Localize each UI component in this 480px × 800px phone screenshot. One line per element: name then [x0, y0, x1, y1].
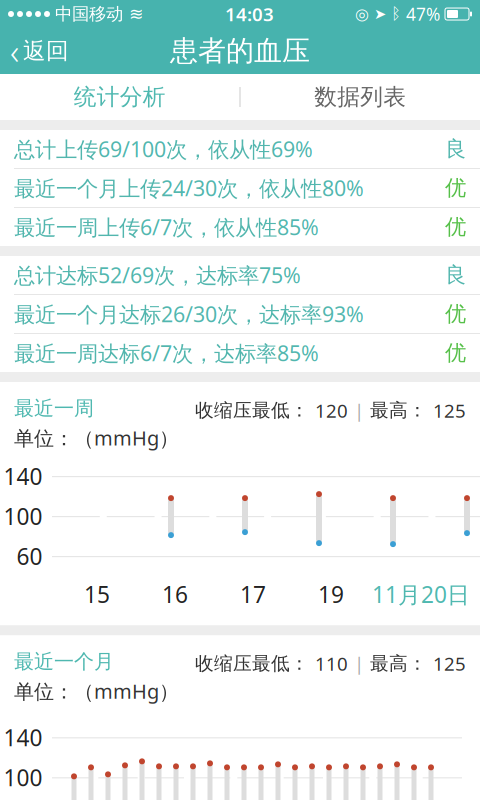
- staticText: ᛒ: [391, 6, 401, 22]
- staticText: 最近一周: [14, 396, 94, 421]
- staticText: 125: [433, 651, 466, 676]
- staticText: ◎: [355, 5, 369, 23]
- staticText: 数据列表: [314, 83, 406, 111]
- button[interactable]: ‹: [0, 28, 79, 74]
- staticText: 120: [315, 398, 348, 423]
- staticText: 100: [3, 501, 42, 531]
- staticText: 最高：: [370, 652, 427, 675]
- staticText: 返回: [23, 37, 69, 65]
- staticText: 16: [162, 579, 188, 609]
- staticText: 优: [445, 301, 466, 327]
- staticText: 中国移动: [55, 3, 123, 25]
- staticText: 11月20日: [372, 579, 470, 609]
- staticText: 收缩压最低：: [195, 652, 309, 675]
- button[interactable]: 统计分析: [0, 74, 239, 120]
- staticText: 患者的血压: [170, 34, 310, 68]
- staticText: 优: [445, 175, 466, 201]
- staticText: 优: [445, 214, 466, 240]
- staticText: 最近一个月达标26/30次，达标率93%: [14, 300, 364, 328]
- staticText: ≋: [129, 4, 144, 24]
- staticText: 100: [3, 762, 42, 792]
- staticText: 总计上传69/100次，依从性69%: [14, 135, 313, 163]
- staticText: 140: [3, 722, 42, 752]
- staticText: 单位：（mmHg）: [14, 678, 179, 704]
- button[interactable]: 数据列表: [240, 74, 480, 120]
- staticText: 19: [318, 579, 344, 609]
- staticText: 优: [445, 340, 466, 366]
- staticText: |: [354, 651, 364, 676]
- staticText: 47%: [406, 2, 440, 25]
- staticText: 60: [16, 541, 42, 571]
- staticText: 最近一个月: [14, 649, 114, 674]
- staticText: ‹: [10, 28, 19, 74]
- staticText: 统计分析: [74, 83, 166, 111]
- staticText: 单位：（mmHg）: [14, 425, 179, 451]
- staticText: 15: [84, 579, 110, 609]
- staticText: 125: [433, 398, 466, 423]
- staticText: 总计达标52/69次，达标率75%: [14, 261, 301, 289]
- staticText: 14:03: [225, 2, 274, 26]
- staticText: 最近一个月上传24/30次，依从性80%: [14, 174, 364, 202]
- staticText: 最近一周上传6/7次，依从性85%: [14, 213, 319, 241]
- staticText: 17: [240, 579, 266, 609]
- staticText: 最高：: [370, 399, 427, 422]
- staticText: 良: [445, 262, 466, 288]
- staticText: |: [354, 398, 364, 423]
- staticText: 140: [3, 461, 42, 491]
- staticText: 收缩压最低：: [195, 399, 309, 422]
- staticText: 110: [315, 651, 348, 676]
- staticText: ➤: [374, 6, 386, 22]
- staticText: 最近一周达标6/7次，达标率85%: [14, 339, 319, 367]
- staticText: 良: [445, 136, 466, 162]
